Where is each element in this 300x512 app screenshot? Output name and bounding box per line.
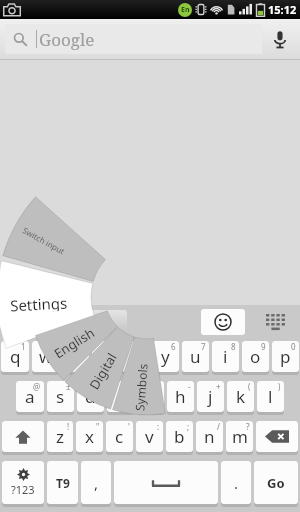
button[interactable]: y [152,341,179,375]
staticText: ± [66,381,71,392]
button[interactable]: Symbols and settings [2,461,44,507]
staticText: 7 [201,341,206,352]
button[interactable]: Hide keyboard [255,305,297,338]
staticText: ( [248,381,251,392]
button[interactable]: u [182,341,209,375]
staticText: u [190,345,201,368]
button[interactable]: GO Keyboard menu [3,305,49,338]
staticText: a [25,385,35,408]
button[interactable]: o [242,341,269,375]
button[interactable]: p [272,341,299,375]
button[interactable]: n [196,421,223,455]
staticText: p [280,345,291,368]
button[interactable]: x [76,421,103,455]
staticText: English [69,313,114,331]
staticText: 3 [81,341,86,352]
staticText: n [204,425,215,448]
staticText: @ [33,381,41,392]
staticText: 8 [231,341,236,352]
staticText: m [232,425,248,448]
staticText: # [95,381,101,392]
staticText: Google [39,28,95,51]
staticText: x [85,425,94,448]
button[interactable]: q [1,341,29,375]
staticText: Symbols [131,362,151,411]
staticText: e [71,345,81,368]
staticText: y [161,345,170,368]
staticText: q [10,345,21,368]
staticText: ' [128,421,130,432]
staticText: + [216,381,221,392]
button[interactable]: c [106,421,133,455]
staticText: Switch input [21,224,67,257]
button[interactable]: Keyboard quick menu [0,0,300,512]
button[interactable]: z [47,421,73,455]
staticText: ; [187,421,190,432]
staticText: b [174,425,185,448]
button[interactable]: Voice search [262,24,298,54]
button[interactable]: j [197,381,224,415]
staticText: o [250,345,261,368]
staticText: l [268,385,273,408]
button[interactable]: Emoji [201,309,245,335]
button[interactable]: . [221,461,251,507]
staticText: f [118,385,124,408]
staticText: Go [267,474,285,492]
staticText: " [96,421,100,432]
button[interactable]: Backspace [256,421,298,455]
button[interactable]: f [107,381,134,415]
staticText: English [51,323,98,362]
staticText: , [94,473,99,493]
button[interactable]: g [137,381,164,415]
button[interactable]: m [226,421,253,455]
button[interactable]: v [136,421,163,455]
staticText: s [56,385,65,408]
staticText: Digital [85,349,121,393]
button[interactable]: Go [254,461,298,507]
button[interactable]: r [92,341,119,375]
button[interactable]: , [81,461,111,507]
button[interactable]: T9 [47,461,78,507]
staticText: w [39,345,53,368]
staticText: ? [246,421,250,432]
button[interactable]: t [122,341,149,375]
button[interactable]: h [167,381,194,415]
staticText: / [217,421,220,432]
staticText: r [102,345,110,368]
staticText: - [188,381,191,392]
staticText: ?123 [11,482,35,497]
staticText: g [145,385,156,408]
button[interactable]: l [257,381,284,415]
button[interactable]: English [55,310,127,334]
staticText: Settings [10,292,68,313]
staticText: 1 [21,341,26,352]
button[interactable]: Space [114,461,218,507]
staticText: 6 [171,341,176,352]
staticText: T9 [56,475,70,491]
button[interactable]: w [32,341,59,375]
button[interactable]: Shift [2,421,44,455]
staticText: j [208,385,213,408]
staticText: : [157,421,160,432]
button[interactable]: s [47,381,74,415]
staticText: . [234,473,239,493]
staticText: i [223,345,228,368]
button[interactable]: k [227,381,254,415]
button[interactable]: a [16,381,44,415]
staticText: k [236,385,246,408]
staticText: En [181,5,190,15]
button[interactable]: d [77,381,104,415]
button[interactable]: e [62,341,89,375]
button[interactable]: Google [5,24,262,54]
staticText: 15:12 [268,2,297,17]
staticText: * [156,381,161,392]
staticText: c [115,425,124,448]
button[interactable]: i [212,341,239,375]
staticText: v [145,425,154,448]
staticText: 2 [51,341,56,352]
button[interactable]: b [166,421,193,455]
staticText: d [85,385,96,408]
